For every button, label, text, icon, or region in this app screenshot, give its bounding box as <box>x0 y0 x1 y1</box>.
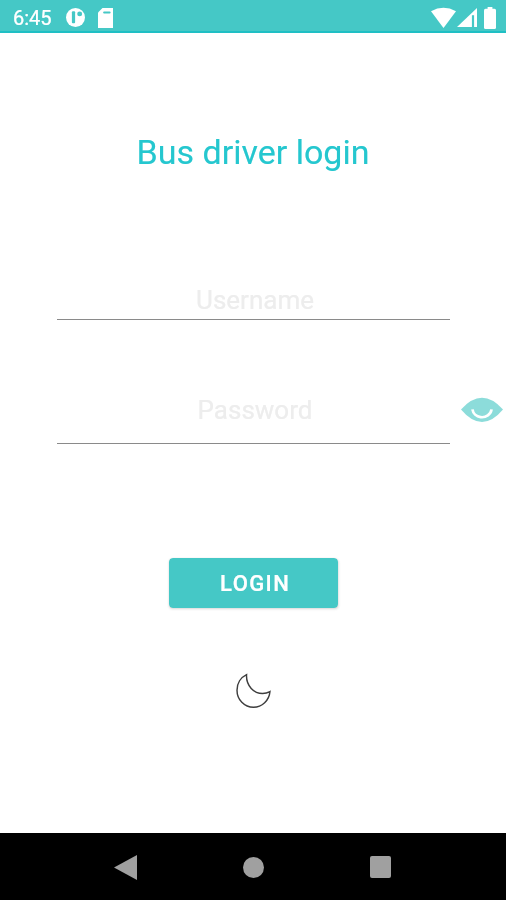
button[interactable]: Username field <box>57 280 450 320</box>
button[interactable]: Toggle dark mode <box>229 665 277 713</box>
button[interactable]: Home <box>229 843 277 891</box>
button[interactable]: Back <box>101 843 149 891</box>
button[interactable]: Password field <box>57 390 450 430</box>
staticText: LOGIN <box>220 571 291 597</box>
button[interactable]: LOGIN <box>169 558 338 608</box>
staticText: Password <box>2 395 506 425</box>
button[interactable]: Show password <box>458 387 505 434</box>
staticText: Username <box>2 285 506 315</box>
staticText: Bus driver login <box>0 132 506 172</box>
staticText: 6:45 <box>13 6 52 29</box>
button[interactable]: Recent apps <box>356 843 404 891</box>
